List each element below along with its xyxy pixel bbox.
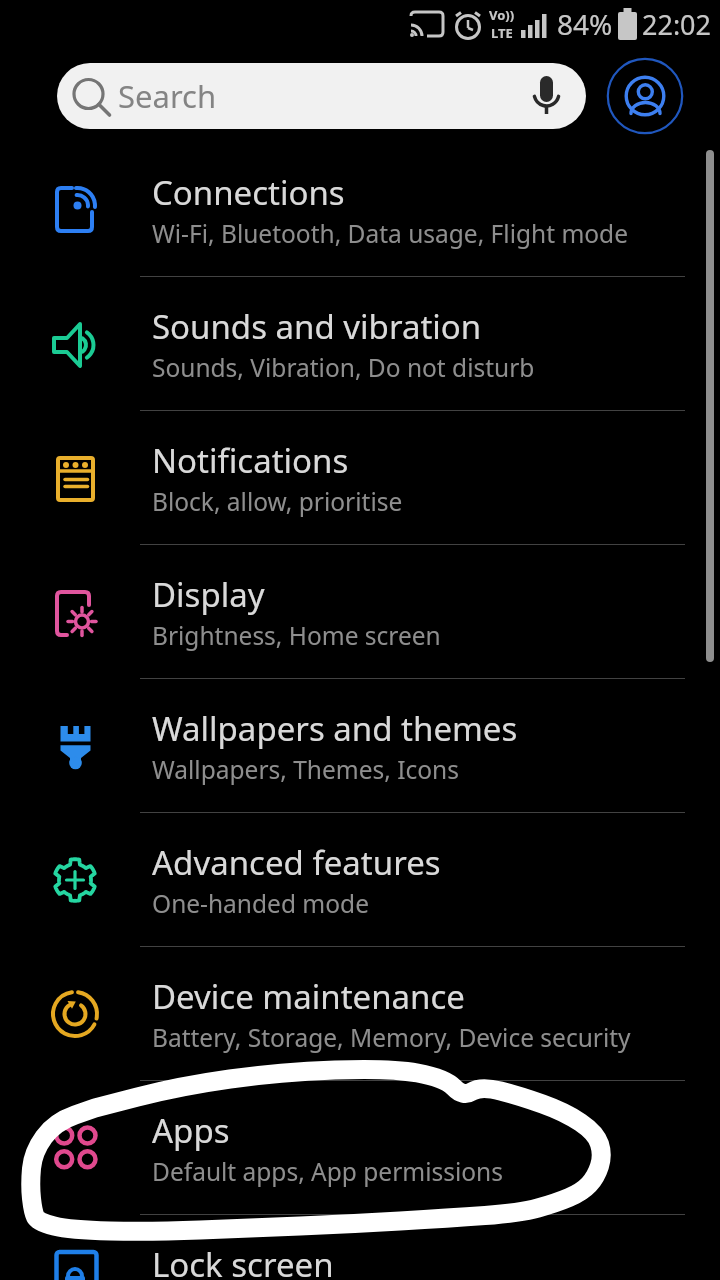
staticText: Wallpapers, Themes, Icons	[152, 753, 459, 786]
staticText: Vo))	[489, 6, 515, 24]
button[interactable]: Display	[0, 545, 720, 679]
staticText: Display	[152, 572, 265, 617]
button[interactable]: Connections	[0, 143, 720, 277]
button[interactable]: Lock screen	[0, 1215, 720, 1280]
staticText: One-handed mode	[152, 887, 369, 920]
staticText: Lock screen	[152, 1242, 334, 1280]
button[interactable]: Advanced features	[0, 813, 720, 947]
staticText: Sounds, Vibration, Do not disturb	[152, 351, 535, 384]
staticText: 22:02	[642, 6, 712, 43]
button[interactable]: Sounds and vibration	[0, 277, 720, 411]
staticText: 84%	[557, 5, 613, 43]
staticText: Wi-Fi, Bluetooth, Data usage, Flight mod…	[152, 217, 629, 250]
staticText: Block, allow, prioritise	[152, 485, 403, 518]
button[interactable]: Notifications	[0, 411, 720, 545]
staticText: LTE	[491, 24, 513, 42]
staticText: Advanced features	[152, 840, 441, 885]
staticText: Search	[118, 75, 217, 117]
staticText: Apps	[152, 1108, 230, 1153]
staticText: Sounds and vibration	[152, 304, 482, 349]
button[interactable]: Search	[57, 63, 586, 129]
staticText: Default apps, App permissions	[152, 1155, 503, 1188]
staticText: Brightness, Home screen	[152, 619, 441, 652]
staticText: Notifications	[152, 438, 349, 483]
staticText: Wallpapers and themes	[152, 706, 518, 751]
button[interactable]: Device maintenance	[0, 947, 720, 1081]
staticText: Connections	[152, 170, 345, 215]
button[interactable]: Apps	[0, 1081, 720, 1215]
button[interactable]	[612, 63, 678, 129]
button[interactable]: Wallpapers and themes	[0, 679, 720, 813]
staticText: Battery, Storage, Memory, Device securit…	[152, 1021, 631, 1054]
staticText: Device maintenance	[152, 974, 465, 1019]
